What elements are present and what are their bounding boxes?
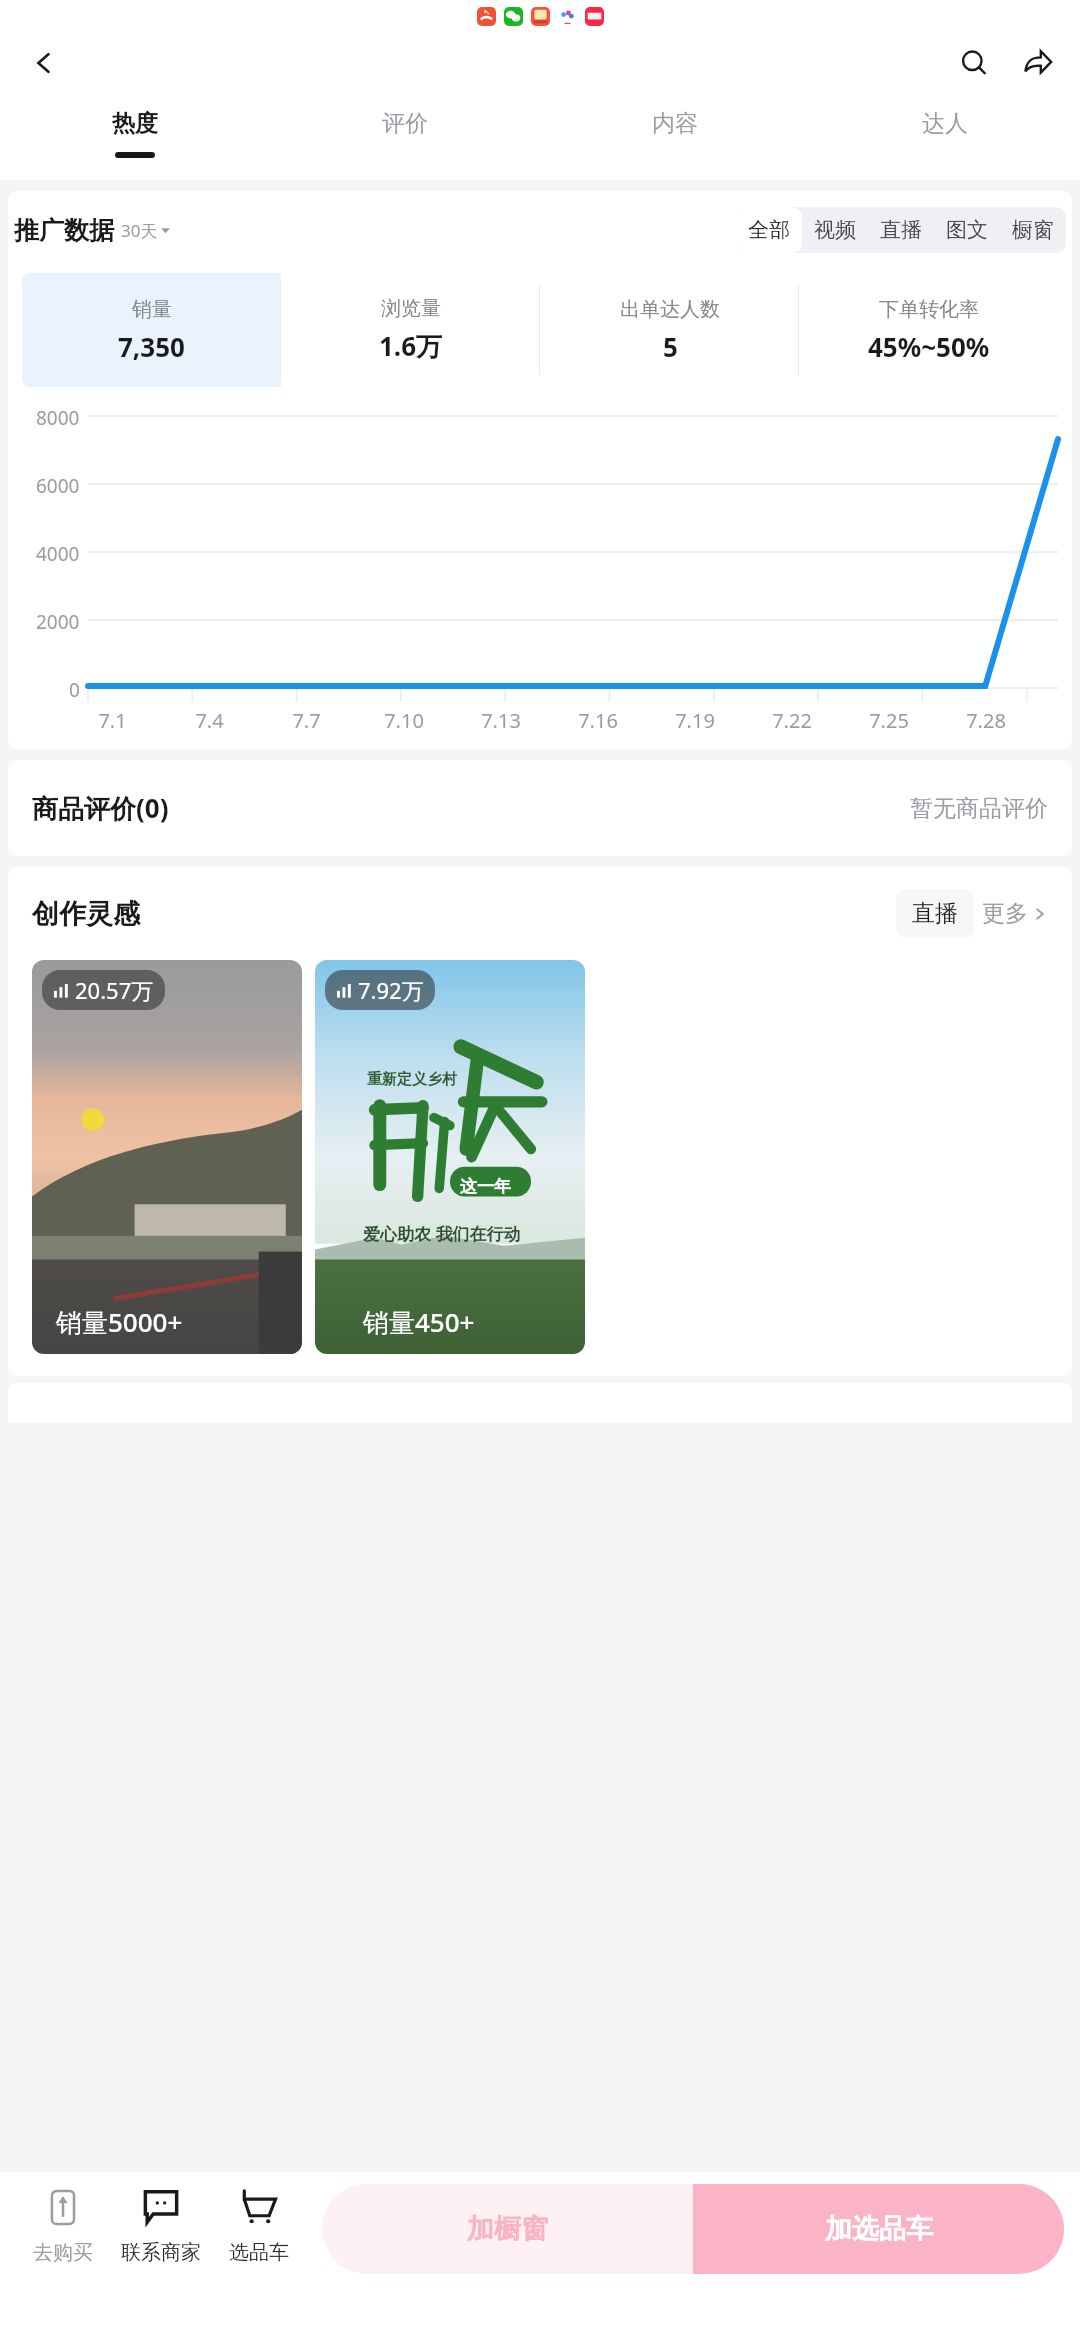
- staticText: 创作灵感: [32, 897, 140, 931]
- staticText: 橱窗: [1012, 217, 1054, 243]
- staticText: 7.16: [578, 707, 618, 734]
- button[interactable]: 30天: [121, 219, 170, 242]
- button[interactable]: 20.57万: [32, 960, 302, 1354]
- staticText: 2000: [36, 609, 80, 631]
- button[interactable]: 热度: [0, 95, 270, 180]
- button[interactable]: 下单转化率: [799, 273, 1058, 387]
- staticText: 加橱窗: [467, 2212, 548, 2246]
- staticText: 45%~50%: [868, 329, 990, 364]
- button[interactable]: 评价: [270, 95, 540, 180]
- button[interactable]: 橱窗: [1000, 207, 1066, 253]
- staticText: 出单达人数: [620, 297, 720, 322]
- staticText: 图文: [946, 217, 988, 243]
- button[interactable]: 直播: [896, 889, 974, 938]
- staticText: 8000: [36, 405, 80, 427]
- staticText: 推广数据: [14, 215, 114, 246]
- staticText: 重新定义乡村: [367, 1070, 457, 1089]
- staticText: 7.92万: [358, 975, 424, 1005]
- button[interactable]: 出单达人数: [540, 273, 799, 387]
- button[interactable]: 浏览量: [281, 273, 540, 387]
- staticText: 5: [663, 329, 678, 364]
- staticText: 7.10: [384, 707, 424, 734]
- button[interactable]: Share: [1012, 37, 1064, 89]
- staticText: 7.4: [195, 707, 224, 734]
- staticText: 0: [69, 677, 80, 699]
- staticText: 7.28: [966, 707, 1006, 734]
- staticText: 销量: [132, 297, 172, 322]
- staticText: 20.57万: [75, 975, 154, 1005]
- staticText: 更多: [982, 899, 1028, 928]
- button[interactable]: 去购买: [14, 2184, 112, 2265]
- button[interactable]: 全部: [736, 207, 802, 253]
- staticText: 浏览量: [381, 296, 441, 321]
- staticText: 4000: [36, 541, 80, 563]
- staticText: 爱心助农 我们在行动: [363, 1222, 521, 1245]
- staticText: 7.13: [481, 707, 521, 734]
- button[interactable]: 联系商家: [112, 2184, 210, 2265]
- staticText: 联系商家: [121, 2240, 201, 2265]
- staticText: 7.22: [772, 707, 812, 734]
- staticText: 6000: [36, 473, 80, 495]
- staticText: 达人: [922, 109, 968, 138]
- button[interactable]: 重新定义乡村: [315, 960, 585, 1354]
- staticText: 加选品车: [825, 2212, 933, 2246]
- button[interactable]: 加橱窗: [322, 2184, 693, 2274]
- staticText: 商品评价(0): [32, 790, 169, 826]
- button[interactable]: 视频: [802, 207, 868, 253]
- staticText: 7,350: [118, 329, 185, 364]
- staticText: 销量450+: [363, 1304, 475, 1340]
- staticText: 内容: [652, 109, 698, 138]
- staticText: 暂无商品评价: [910, 794, 1048, 823]
- button[interactable]: 直播: [868, 207, 934, 253]
- button[interactable]: 商品评价(0): [8, 760, 1072, 856]
- button[interactable]: 更多: [982, 899, 1048, 928]
- staticText: 选品车: [229, 2240, 289, 2265]
- button[interactable]: 销量: [22, 273, 281, 387]
- button[interactable]: 图文: [934, 207, 1000, 253]
- staticText: 去购买: [33, 2240, 93, 2265]
- button[interactable]: 达人: [810, 95, 1080, 180]
- staticText: 30天: [121, 219, 158, 242]
- button[interactable]: Search: [948, 37, 1000, 89]
- staticText: 7.7: [292, 707, 321, 734]
- button[interactable]: 选品车: [210, 2184, 308, 2265]
- staticText: 直播: [880, 217, 922, 243]
- staticText: 7.1: [98, 707, 127, 734]
- staticText: 直播: [912, 899, 958, 928]
- staticText: 热度: [112, 109, 158, 138]
- staticText: 销量5000+: [56, 1304, 183, 1340]
- staticText: 这一年: [460, 1176, 511, 1197]
- staticText: 7.25: [869, 707, 909, 734]
- staticText: 下单转化率: [879, 297, 979, 322]
- button[interactable]: 内容: [540, 95, 810, 180]
- staticText: 7.19: [675, 707, 715, 734]
- staticText: 全部: [748, 217, 790, 243]
- staticText: 评价: [382, 109, 428, 138]
- staticText: 1.6万: [379, 328, 443, 364]
- button[interactable]: Back: [22, 41, 66, 85]
- button[interactable]: 加选品车: [693, 2184, 1064, 2274]
- staticText: 视频: [814, 217, 856, 243]
